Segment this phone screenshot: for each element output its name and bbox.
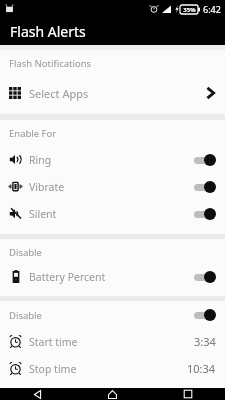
button[interactable]: Toggle on xyxy=(192,180,216,194)
staticText: Vibrate xyxy=(29,180,65,194)
button[interactable]: Toggle on xyxy=(192,153,216,167)
button[interactable]: Disable xyxy=(0,305,225,325)
button[interactable]: Back xyxy=(0,388,75,400)
button[interactable]: Toggle on xyxy=(192,270,216,284)
staticText: 35% xyxy=(183,6,196,14)
button[interactable]: Stop time xyxy=(0,355,225,382)
staticText: Battery Percent xyxy=(29,270,106,284)
button[interactable]: Select Apps xyxy=(0,80,225,106)
staticText: Select Apps xyxy=(29,86,89,101)
button[interactable]: Silent xyxy=(0,200,225,227)
other: Open app list xyxy=(205,85,216,101)
button[interactable]: Vibrate xyxy=(0,173,225,200)
button[interactable]: Toggle on xyxy=(192,308,216,322)
staticText: 3:34 xyxy=(194,334,216,349)
button[interactable]: Battery Percent xyxy=(0,263,225,290)
staticText: Disable xyxy=(9,309,42,322)
staticText: Flash Notifications xyxy=(9,57,92,70)
staticText: Flash Alerts xyxy=(10,22,86,41)
staticText: Disable xyxy=(9,246,42,259)
staticText: Start time xyxy=(29,335,78,349)
staticText: Stop time xyxy=(29,362,77,376)
staticText: Silent xyxy=(29,207,57,221)
staticText: Enable For xyxy=(9,127,57,140)
button[interactable]: Ring xyxy=(0,146,225,173)
staticText: Ring xyxy=(29,153,52,167)
staticText: 10:34 xyxy=(187,361,216,376)
button[interactable]: Home xyxy=(75,388,150,400)
button[interactable]: Start time xyxy=(0,328,225,355)
staticText: 6:42 xyxy=(203,3,221,15)
button[interactable]: Toggle on xyxy=(192,207,216,221)
button[interactable]: Recent apps xyxy=(150,388,225,400)
